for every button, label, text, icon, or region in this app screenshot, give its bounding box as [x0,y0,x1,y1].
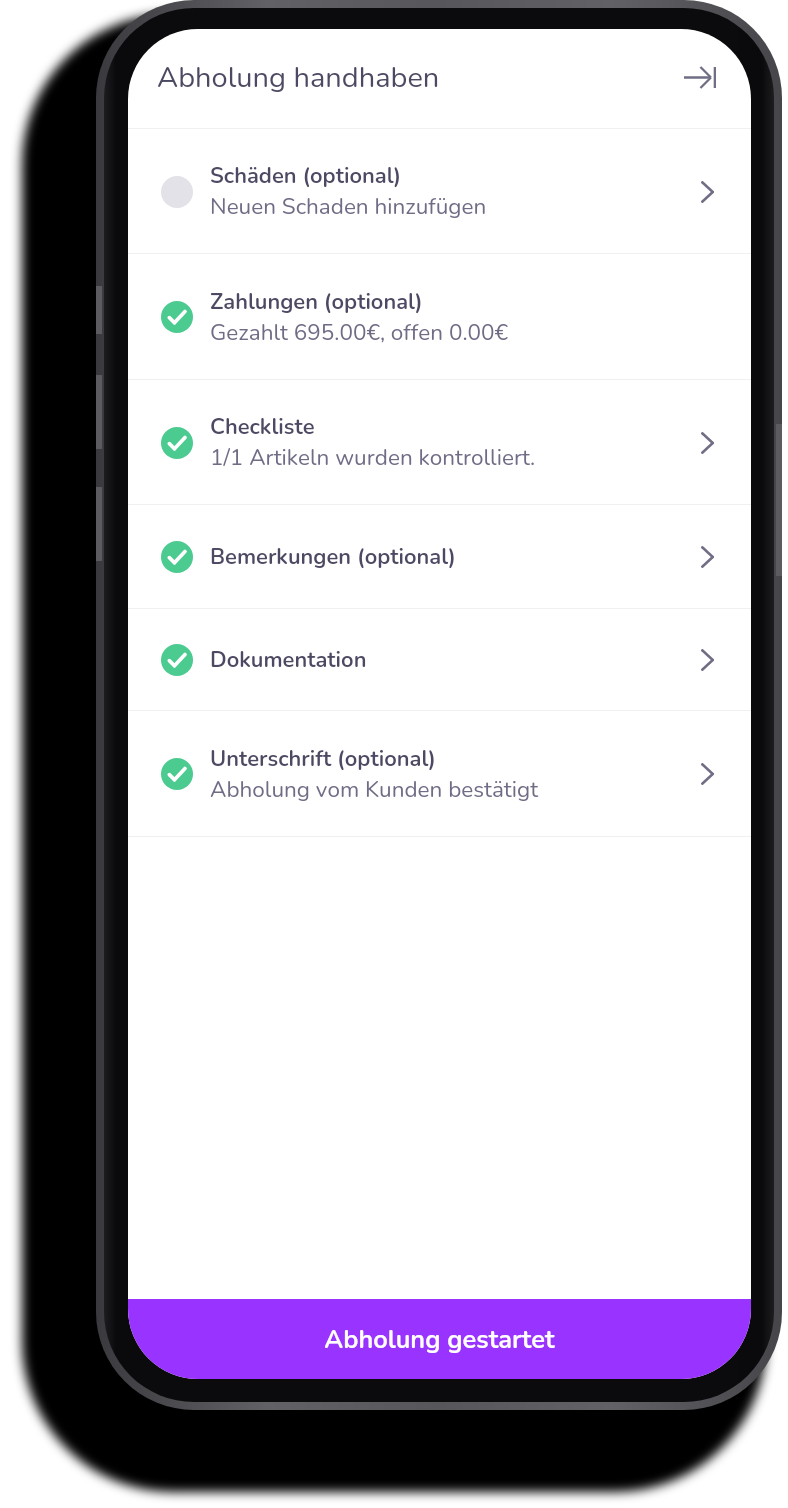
staticText: Dokumentation [210,645,367,675]
other: Öffnen [689,534,725,580]
staticText: Bemerkungen (optional) [210,542,456,572]
staticText: Gezahlt 695.00€, offen 0.00€ [210,317,509,348]
button[interactable]: Bemerkungen (optional) [128,505,751,609]
staticText: Unterschrift (optional) [210,744,436,774]
other: Öffnen [689,420,725,466]
button[interactable]: Unterschrift (optional) [128,711,751,837]
staticText: 1/1 Artikeln wurden kontrolliert. [210,442,536,473]
staticText: Zahlungen (optional) [210,287,423,317]
staticText: Abholung vom Kunden bestätigt [210,774,539,805]
staticText: Schäden (optional) [210,161,402,191]
button[interactable]: Abholung abschliessen [669,46,731,108]
staticText: Abholung handhaben [157,58,440,98]
button[interactable]: Checkliste [128,380,751,505]
staticText: Checkliste [210,412,315,442]
other: Öffnen [689,169,725,215]
button[interactable]: Zahlungen (optional) [128,254,751,380]
button[interactable]: Dokumentation [128,609,751,711]
staticText: Abholung gestartet [324,1322,555,1357]
button[interactable]: Schäden (optional) [128,129,751,254]
button[interactable]: Abholung gestartet [128,1299,751,1379]
staticText: Neuen Schaden hinzufügen [210,191,487,222]
other: Öffnen [689,637,725,683]
other: Öffnen [689,751,725,797]
